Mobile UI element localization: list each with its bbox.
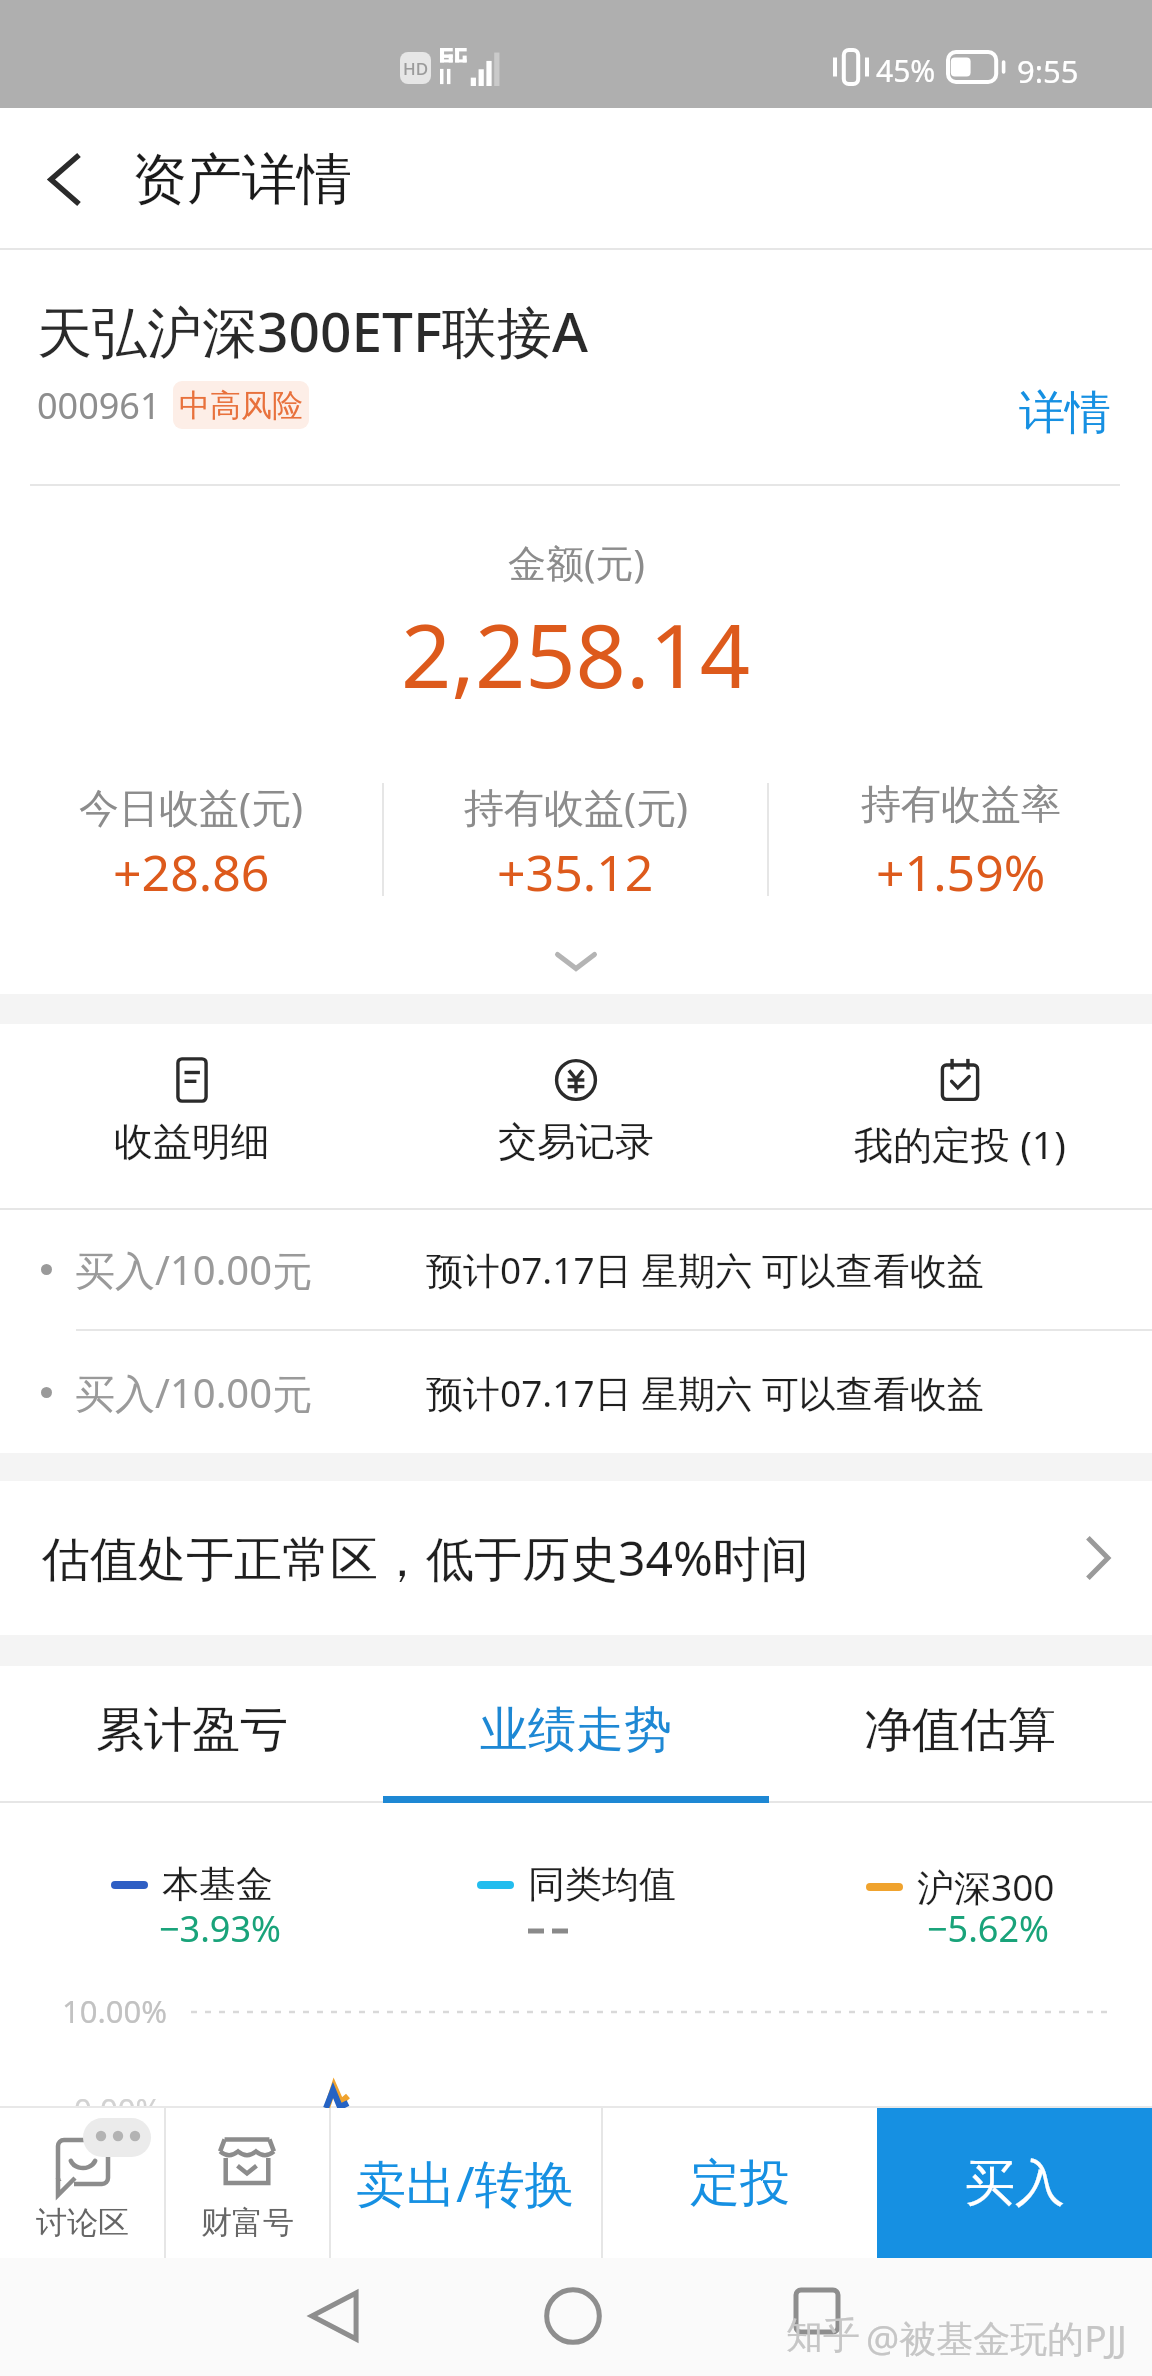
button[interactable]: 卖出/转换	[330, 2108, 601, 2258]
staticText: 财富号	[201, 2203, 294, 2242]
button[interactable]: 业绩走势	[384, 1666, 768, 1803]
staticText: HD	[403, 57, 429, 80]
staticText: 讨论区	[36, 2203, 129, 2242]
button[interactable]: 我的定投 (1)	[768, 1024, 1152, 1208]
staticText: 同类均值	[528, 1861, 676, 1908]
staticText: 9:55	[1017, 50, 1079, 92]
staticText: −5.62%	[927, 1904, 1049, 1953]
staticText: 持有收益(元)	[464, 779, 688, 834]
staticText: @被基金玩的PJJ	[866, 2312, 1127, 2363]
staticText: 我的定投 (1)	[854, 1117, 1066, 1170]
button[interactable]: Back	[294, 2276, 374, 2356]
button[interactable]: 买入/10.00元	[0, 1210, 1152, 1329]
button[interactable]: 交易记录	[384, 1024, 768, 1208]
button[interactable]: 估值处于正常区，低于历史34%时间	[0, 1481, 1152, 1635]
staticText: 知乎	[786, 2312, 860, 2359]
button[interactable]: 定投	[602, 2108, 877, 2258]
button[interactable]: 买入	[877, 2108, 1152, 2258]
staticText: 2,258.14	[401, 594, 751, 714]
staticText: 资产详情	[132, 145, 352, 214]
staticText: 持有收益率	[861, 779, 1061, 829]
staticText: 净值估算	[864, 1700, 1056, 1760]
staticText: 收益明细	[114, 1117, 270, 1166]
button[interactable]: Recents	[777, 2271, 857, 2351]
button[interactable]: 买入/10.00元	[0, 1331, 1152, 1453]
staticText: 今日收益(元)	[79, 779, 303, 834]
staticText: 估值处于正常区，低于历史34%时间	[42, 1525, 809, 1591]
button[interactable]: 财富号	[165, 2108, 329, 2258]
staticText: −3.93%	[159, 1904, 281, 1953]
staticText: +35.12	[497, 838, 654, 906]
staticText: 详情	[1019, 384, 1111, 442]
button[interactable]: 讨论区	[0, 2108, 164, 2258]
staticText: 0.00%	[74, 2088, 162, 2130]
staticText: 天弘沪深300ETF联接A	[37, 293, 588, 368]
button[interactable]: 累计盈亏	[0, 1666, 384, 1803]
staticText: 预计07.17日 星期六 可以查看收益	[426, 1367, 984, 1418]
staticText: 中高风险	[179, 386, 303, 425]
button[interactable]: Home	[533, 2276, 613, 2356]
staticText: 000961	[37, 381, 161, 430]
staticText: 交易记录	[498, 1117, 654, 1166]
staticText: 买入/10.00元	[75, 1242, 313, 1297]
button[interactable]: 收益明细	[0, 1024, 384, 1208]
staticText: 累计盈亏	[96, 1700, 288, 1760]
button[interactable]: 净值估算	[768, 1666, 1152, 1803]
staticText: 业绩走势	[480, 1700, 672, 1760]
staticText: 买入/10.00元	[75, 1365, 313, 1420]
staticText: 定投	[690, 2152, 790, 2215]
staticText: +28.86	[113, 838, 270, 906]
staticText: 45%	[876, 50, 936, 91]
staticText: 沪深300	[917, 1861, 1055, 1912]
staticText: 预计07.17日 星期六 可以查看收益	[426, 1244, 984, 1295]
staticText: 10.00%	[62, 1990, 167, 2032]
staticText: 卖出/转换	[356, 2149, 575, 2217]
staticText: 金额(元)	[508, 536, 645, 588]
button[interactable]: 详情	[1015, 380, 1115, 446]
button[interactable]: Back	[25, 139, 105, 219]
staticText: 买入	[965, 2152, 1065, 2215]
staticText: 本基金	[162, 1861, 273, 1908]
button[interactable]: Expand	[526, 941, 626, 981]
staticText: +1.59%	[876, 838, 1046, 906]
